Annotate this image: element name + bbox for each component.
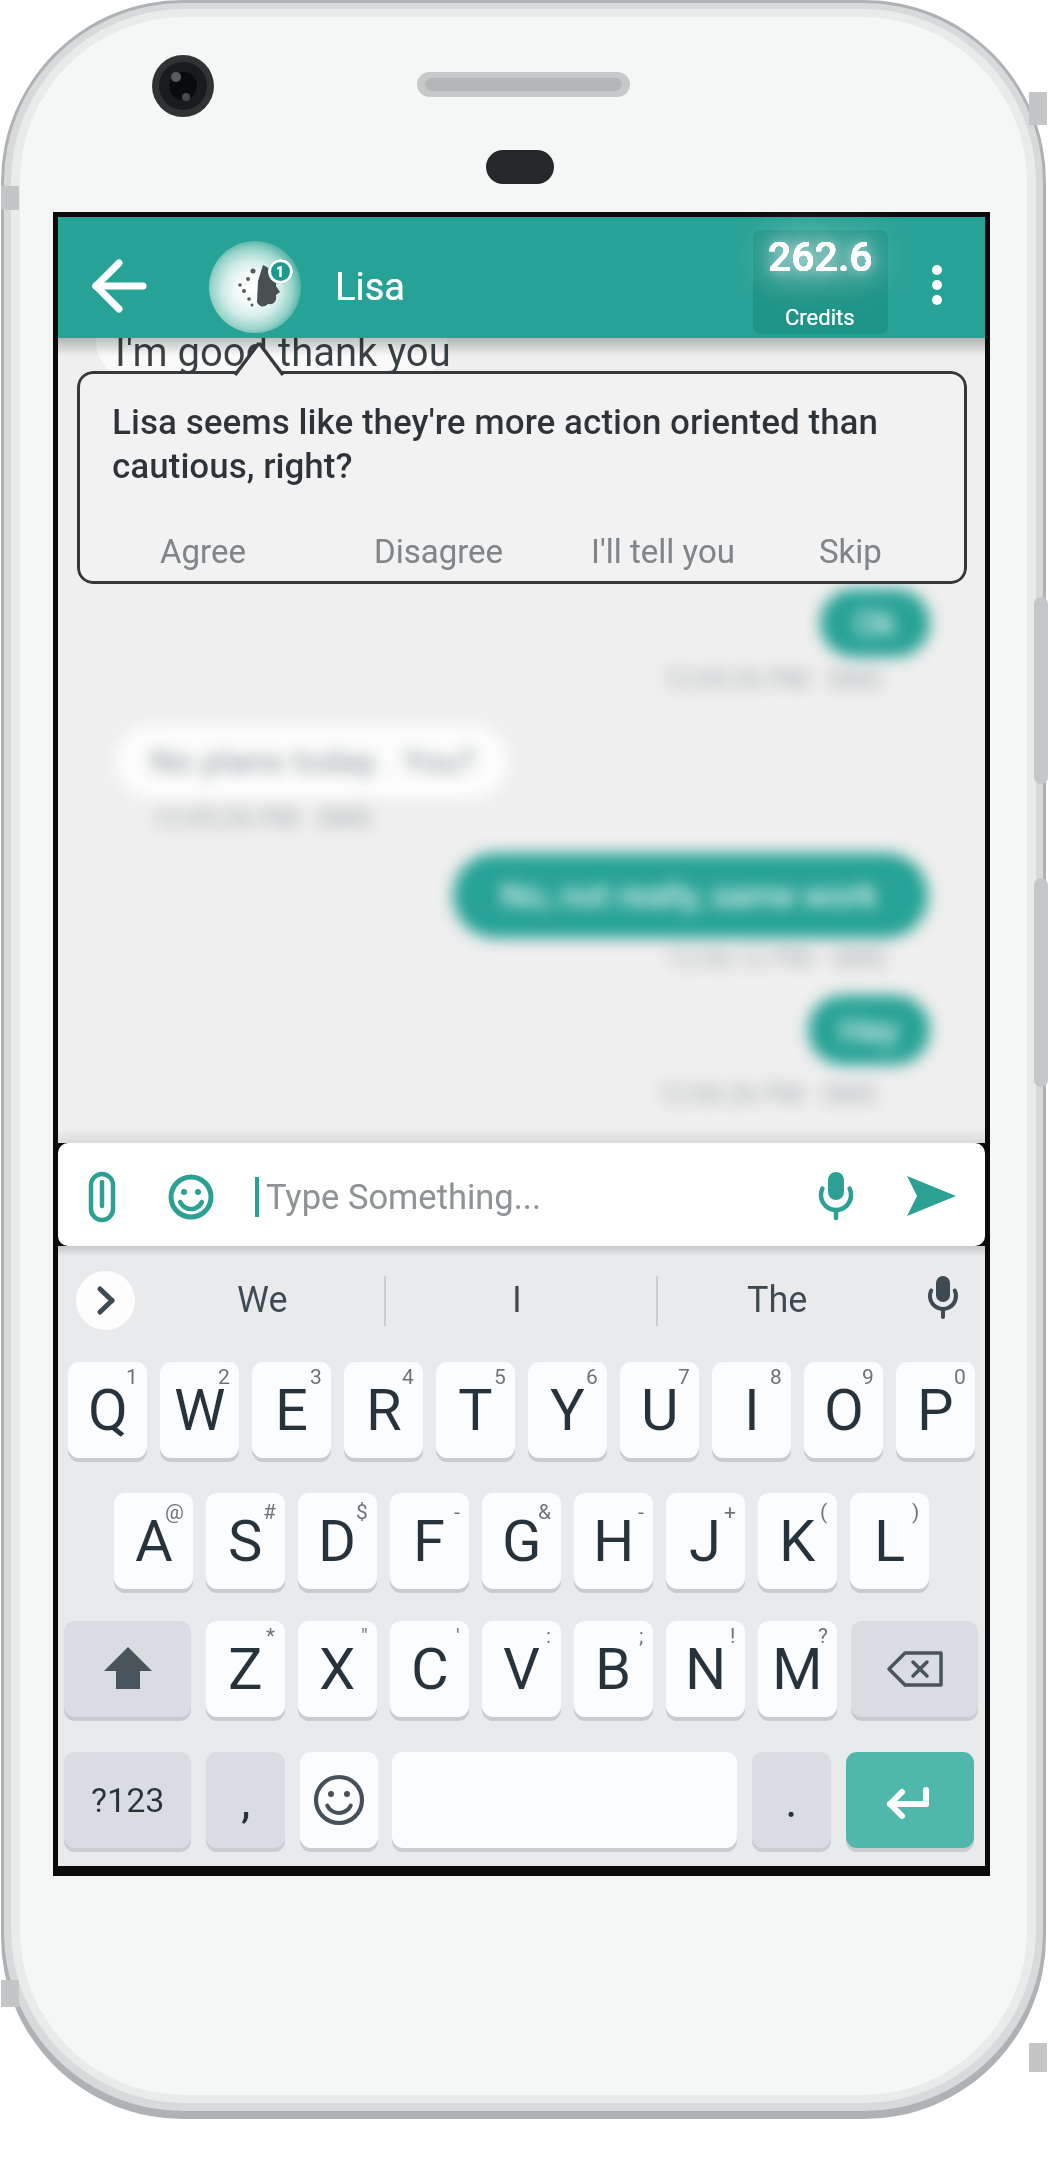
- button[interactable]: [702, 1266, 852, 1334]
- staticText: 9: [862, 1365, 874, 1390]
- staticText: Skip: [819, 532, 882, 571]
- button[interactable]: ,: [206, 1752, 285, 1848]
- staticText: 12:06:26 PM - SMS: [657, 1079, 877, 1109]
- button[interactable]: P: [896, 1362, 975, 1458]
- button[interactable]: [917, 1270, 969, 1330]
- staticText: Y: [550, 1376, 585, 1444]
- button[interactable]: U: [620, 1362, 699, 1458]
- staticText: No plans today . You?: [150, 741, 476, 781]
- staticText: J: [689, 1507, 722, 1575]
- staticText: S: [228, 1507, 263, 1575]
- staticText: 4: [402, 1365, 414, 1390]
- staticText: U: [641, 1376, 679, 1444]
- button[interactable]: F: [390, 1493, 469, 1589]
- button[interactable]: [899, 1170, 961, 1222]
- staticText: I: [744, 1376, 760, 1444]
- staticText: F: [413, 1507, 446, 1575]
- staticText: ": [361, 1624, 368, 1649]
- button[interactable]: W: [160, 1362, 239, 1458]
- button[interactable]: [209, 241, 301, 333]
- button[interactable]: [790, 516, 910, 586]
- button[interactable]: X: [298, 1621, 377, 1717]
- staticText: -: [638, 1500, 644, 1525]
- button[interactable]: I: [712, 1362, 791, 1458]
- staticText: E: [275, 1376, 308, 1444]
- staticText: C: [411, 1635, 449, 1703]
- button[interactable]: Q: [68, 1362, 147, 1458]
- staticText: Credits: [785, 305, 855, 331]
- button[interactable]: [300, 1752, 378, 1848]
- staticText: Z: [228, 1635, 263, 1703]
- button[interactable]: [64, 1621, 191, 1717]
- staticText: D: [318, 1507, 357, 1575]
- button[interactable]: [851, 1621, 978, 1717]
- button[interactable]: Z: [206, 1621, 285, 1717]
- button[interactable]: T: [436, 1362, 515, 1458]
- staticText: I'll tell you: [591, 532, 735, 571]
- staticText: 12:05:26 PM - SMS: [152, 803, 372, 833]
- staticText: ?123: [91, 1780, 165, 1820]
- button[interactable]: .: [752, 1752, 831, 1848]
- staticText: A: [135, 1507, 173, 1575]
- button[interactable]: [187, 1266, 337, 1334]
- staticText: Lisa: [335, 265, 405, 310]
- staticText: .: [785, 1772, 798, 1828]
- button[interactable]: E: [252, 1362, 331, 1458]
- button[interactable]: L: [850, 1493, 929, 1589]
- staticText: -: [454, 1500, 460, 1525]
- staticText: @: [165, 1500, 184, 1525]
- staticText: O: [824, 1376, 864, 1444]
- button[interactable]: Y: [528, 1362, 607, 1458]
- button[interactable]: K: [758, 1493, 837, 1589]
- staticText: K: [779, 1507, 816, 1575]
- button[interactable]: [915, 250, 961, 324]
- staticText: X: [319, 1635, 356, 1703]
- button[interactable]: [143, 516, 263, 586]
- staticText: 8: [770, 1365, 782, 1390]
- button[interactable]: J: [666, 1493, 745, 1589]
- button[interactable]: N: [666, 1621, 745, 1717]
- button[interactable]: [753, 230, 888, 334]
- button[interactable]: S: [206, 1493, 285, 1589]
- staticText: ?: [818, 1624, 828, 1649]
- staticText: T: [458, 1376, 493, 1444]
- button[interactable]: D: [298, 1493, 377, 1589]
- button[interactable]: M: [758, 1621, 837, 1717]
- button[interactable]: H: [574, 1493, 653, 1589]
- staticText: P: [917, 1376, 954, 1444]
- staticText: 262.6: [768, 233, 873, 281]
- button[interactable]: R: [344, 1362, 423, 1458]
- staticText: 5: [494, 1365, 506, 1390]
- button[interactable]: [80, 248, 160, 328]
- staticText: 3: [310, 1365, 322, 1390]
- staticText: &: [538, 1500, 552, 1525]
- button[interactable]: [76, 1271, 135, 1330]
- staticText: $: [356, 1500, 368, 1525]
- staticText: 6: [586, 1365, 598, 1390]
- staticText: !: [730, 1624, 736, 1649]
- button[interactable]: G: [482, 1493, 561, 1589]
- button[interactable]: [442, 1266, 592, 1334]
- button[interactable]: [78, 1168, 126, 1228]
- button[interactable]: A: [114, 1493, 193, 1589]
- staticText: ': [456, 1624, 460, 1649]
- staticText: No, not really, same work: [501, 875, 878, 915]
- staticText: 262.6: [768, 233, 873, 281]
- button[interactable]: [846, 1752, 974, 1848]
- button[interactable]: V: [482, 1621, 561, 1717]
- staticText: ,: [241, 1772, 251, 1828]
- button[interactable]: ?123: [64, 1752, 191, 1848]
- button[interactable]: C: [390, 1621, 469, 1717]
- button[interactable]: [810, 1168, 862, 1228]
- staticText: 1: [126, 1365, 138, 1390]
- button[interactable]: O: [804, 1362, 883, 1458]
- staticText: Type Something...: [266, 1177, 542, 1217]
- button[interactable]: [166, 1172, 216, 1222]
- button[interactable]: [583, 516, 743, 586]
- button[interactable]: B: [574, 1621, 653, 1717]
- staticText: 2: [218, 1365, 230, 1390]
- staticText: M: [772, 1635, 823, 1703]
- button[interactable]: [359, 516, 519, 586]
- staticText: L: [874, 1507, 906, 1575]
